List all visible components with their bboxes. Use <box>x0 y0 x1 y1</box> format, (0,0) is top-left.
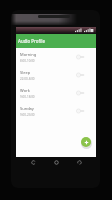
button[interactable]: Toggle Sunday <box>76 107 86 115</box>
button[interactable]: Toggle Sleep <box>76 71 86 79</box>
button[interactable]: Recents <box>73 158 85 166</box>
staticText: 22:00-8:00 <box>20 77 35 81</box>
staticText: Morning <box>20 52 37 57</box>
button[interactable]: Toggle Work <box>76 89 86 97</box>
staticText: Audio Profile <box>18 38 45 44</box>
staticText: 9:00-23:00 <box>20 113 35 117</box>
staticText: 8:00-10:00 <box>20 59 35 63</box>
button[interactable]: Sleep <box>16 66 96 84</box>
button[interactable]: Sunday <box>16 102 96 120</box>
button[interactable]: Work <box>16 84 96 102</box>
button[interactable]: Morning <box>16 48 96 66</box>
button[interactable]: Add profile <box>81 137 91 147</box>
button[interactable]: Toggle Morning <box>76 53 86 61</box>
staticText: Work <box>20 88 30 93</box>
button[interactable]: Home <box>50 158 62 166</box>
staticText: Sunday <box>20 106 34 111</box>
staticText: Sleep <box>20 70 31 75</box>
button[interactable]: Back <box>27 158 39 166</box>
staticText: 9:00-18:00 <box>20 95 35 99</box>
